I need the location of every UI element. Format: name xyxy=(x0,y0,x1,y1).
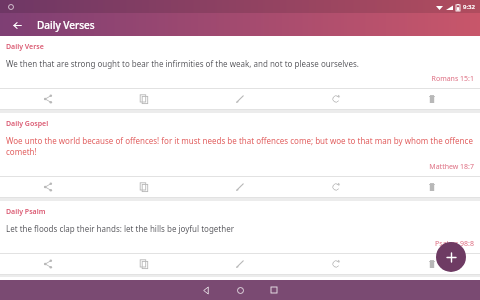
button[interactable]: Delete xyxy=(384,89,480,109)
staticText: Daily Gospel xyxy=(6,119,49,129)
button[interactable]: Refresh xyxy=(288,177,384,197)
button[interactable]: Edit xyxy=(192,89,288,109)
button[interactable]: Copy xyxy=(96,89,192,109)
button[interactable]: Share xyxy=(0,89,96,109)
staticText: Psalms 98:8 xyxy=(0,239,474,249)
button[interactable]: Delete xyxy=(384,177,480,197)
button[interactable]: Refresh xyxy=(288,89,384,109)
button[interactable]: Edit xyxy=(192,254,288,274)
staticText: Romans 15:1 xyxy=(0,74,474,84)
staticText: Matthew 18:7 xyxy=(0,162,474,172)
staticText: Woe unto the world because of offences! … xyxy=(6,135,474,157)
staticText: Let the floods clap their hands: let the… xyxy=(6,223,234,234)
staticText: 9:32 xyxy=(463,3,475,11)
button[interactable]: Share xyxy=(0,254,96,274)
button[interactable]: Home xyxy=(223,280,257,300)
staticText: Daily Verse xyxy=(6,42,44,52)
button[interactable]: Refresh xyxy=(288,254,384,274)
button[interactable]: Share xyxy=(0,177,96,197)
button[interactable]: Add verse xyxy=(436,242,466,272)
staticText: Daily Psalm xyxy=(6,207,46,217)
staticText: We then that are strong ought to bear th… xyxy=(6,58,359,69)
button[interactable]: Edit xyxy=(192,177,288,197)
button[interactable]: Back xyxy=(8,16,26,34)
button[interactable]: Delete xyxy=(384,254,480,274)
button[interactable]: Back xyxy=(189,280,223,300)
button[interactable]: Copy xyxy=(96,254,192,274)
button[interactable]: Copy xyxy=(96,177,192,197)
button[interactable]: Recent apps xyxy=(257,280,291,300)
staticText: Daily Verses xyxy=(37,18,95,32)
